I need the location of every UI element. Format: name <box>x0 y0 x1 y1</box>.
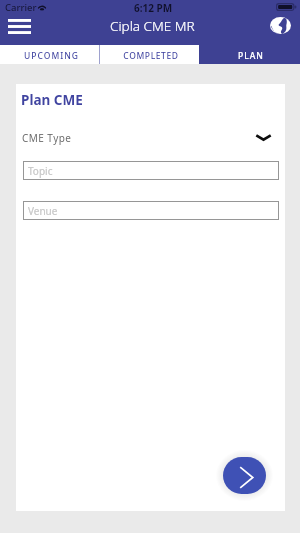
staticText: UPCOMING <box>24 50 79 62</box>
staticText: CME Type <box>22 131 72 145</box>
button[interactable]: Select CME Type <box>247 126 280 148</box>
button[interactable]: Menu <box>0 13 39 39</box>
staticText: Topic <box>28 164 53 178</box>
button[interactable]: Language <box>265 13 295 38</box>
button[interactable]: UPCOMING <box>0 45 100 64</box>
button[interactable]: PLAN <box>199 45 300 64</box>
staticText: 6:12 PM <box>134 1 173 15</box>
staticText: Venue <box>28 204 58 218</box>
button[interactable]: COMPLETED <box>100 45 199 64</box>
staticText: Plan CME <box>21 91 83 109</box>
button[interactable]: Venue <box>23 201 279 220</box>
staticText: Cipla CME MR <box>110 17 195 35</box>
staticText: Carrier <box>5 1 37 14</box>
staticText: COMPLETED <box>123 50 179 62</box>
button[interactable]: Next <box>223 457 266 494</box>
button[interactable]: Topic <box>23 161 279 180</box>
staticText: PLAN <box>238 50 264 62</box>
